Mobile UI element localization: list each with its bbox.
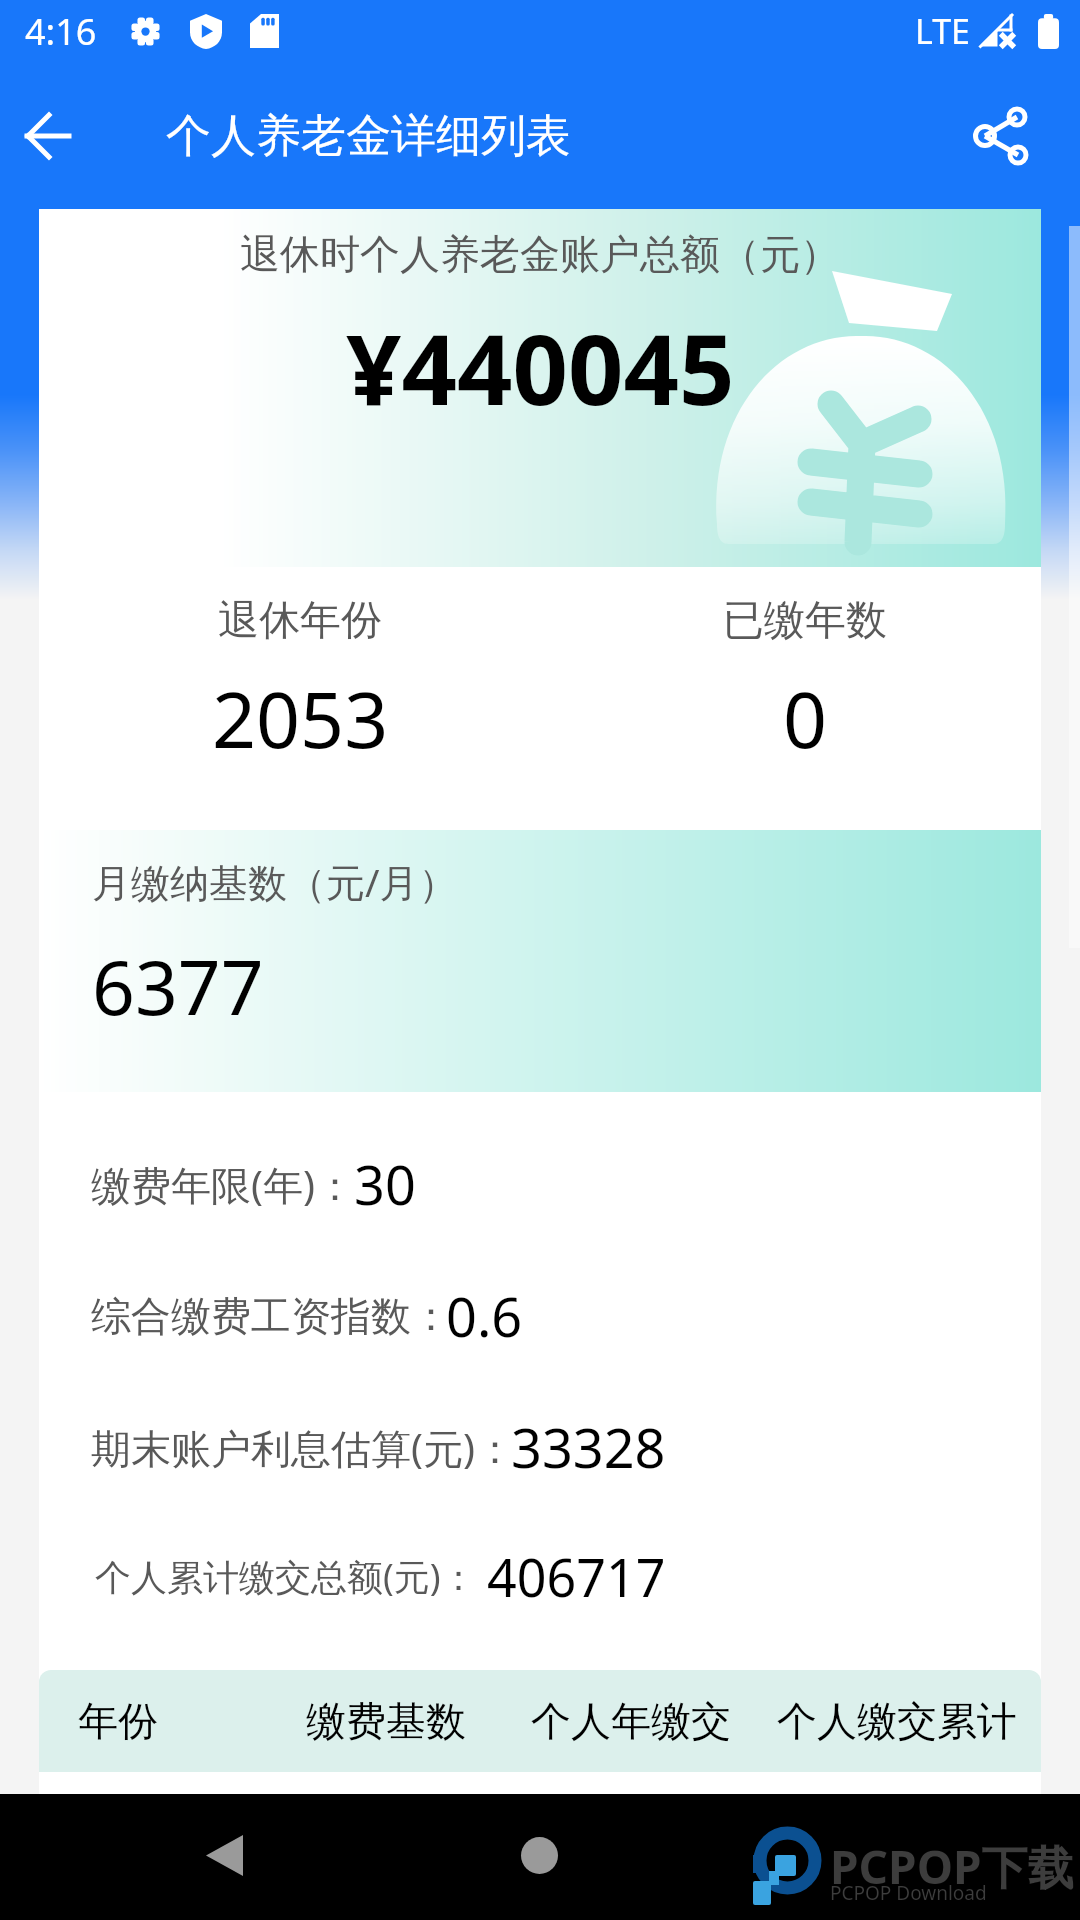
staticText: 0: [783, 666, 828, 771]
staticText: 2053: [212, 666, 389, 771]
staticText: 个人累计缴交总额(元)：: [95, 1552, 477, 1601]
staticText: 期末账户利息估算(元)：: [91, 1420, 515, 1475]
staticText: 缴费基数: [306, 1696, 466, 1746]
staticText: 年份: [78, 1696, 158, 1746]
button[interactable]: Recent apps: [780, 1794, 930, 1920]
staticText: 6377: [92, 935, 264, 1037]
staticText: 406717: [487, 1541, 666, 1612]
button[interactable]: Home: [465, 1794, 615, 1920]
staticText: 33328: [511, 1410, 666, 1484]
staticText: 月缴纳基数（元/月）: [92, 855, 458, 908]
button[interactable]: Back: [150, 1794, 300, 1920]
staticText: PCPOP下载: [830, 1835, 1074, 1898]
staticText: 个人养老金详细列表: [166, 108, 571, 165]
staticText: 4:16: [25, 7, 97, 56]
staticText: 缴费年限(年)：: [91, 1157, 355, 1212]
staticText: 个人缴交累计: [777, 1696, 1017, 1746]
staticText: 已缴年数: [723, 595, 887, 647]
staticText: 个人年缴交: [531, 1696, 731, 1746]
staticText: ¥440045: [346, 301, 735, 433]
staticText: 0.6: [446, 1279, 523, 1353]
button[interactable]: Share: [966, 88, 1080, 184]
button[interactable]: Back: [0, 88, 96, 184]
staticText: 30: [354, 1147, 416, 1221]
staticText: 退休时个人养老金账户总额（元）: [240, 229, 840, 279]
staticText: LTE: [915, 8, 970, 54]
staticText: 综合缴费工资指数：: [91, 1291, 451, 1341]
staticText: 退休年份: [218, 595, 382, 647]
staticText: PCPOP Download: [830, 1880, 987, 1906]
